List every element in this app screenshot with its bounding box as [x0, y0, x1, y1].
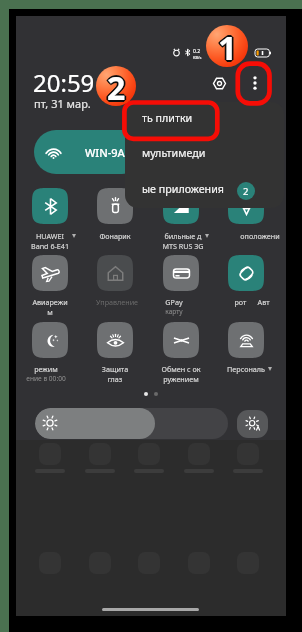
staticText: 20:59 [33, 66, 95, 99]
button[interactable]: HUAWEI [32, 188, 68, 224]
staticText: 1 [219, 25, 238, 66]
button[interactable]: Защита [97, 322, 133, 358]
button[interactable]: GPay [163, 255, 199, 291]
staticText: 2 [107, 66, 126, 106]
button[interactable]: оположени [228, 188, 264, 224]
staticText: глаз [72, 374, 158, 384]
staticText: 1 [218, 27, 237, 67]
staticText: WIN-9A [85, 145, 125, 160]
staticText: ть плитки [142, 111, 193, 126]
button[interactable]: Персональ [228, 322, 264, 358]
staticText: 2 [243, 185, 249, 198]
staticText: рот Авт [209, 297, 295, 307]
staticText: MTS RUS 3G [140, 241, 226, 251]
button[interactable]: More options [244, 72, 266, 94]
staticText: Авиарежи [7, 297, 93, 307]
staticText: 0.2 [193, 48, 201, 55]
staticText: Band 6-E41 [7, 241, 93, 251]
button[interactable]: Авиарежи [32, 255, 68, 291]
button[interactable]: WIN-9A [34, 130, 144, 174]
staticText: режим [3, 364, 89, 374]
staticText: 1 [218, 25, 237, 65]
staticText: GPay [131, 297, 217, 307]
button[interactable]: Управление [97, 255, 133, 291]
staticText: Защита [72, 364, 158, 374]
button[interactable]: бильные д [163, 188, 199, 224]
staticText: пт, 31 мар. [34, 96, 91, 111]
staticText: бильные д [140, 231, 226, 241]
staticText: 1 [220, 25, 239, 67]
staticText: Персональ [203, 364, 289, 374]
staticText: 2 [108, 67, 127, 106]
staticText: KB/s [193, 55, 202, 60]
button[interactable]: ые приложения [125, 173, 284, 208]
staticText: 1 [219, 26, 238, 67]
staticText: 2 [106, 67, 125, 106]
button[interactable]: Обмен с ок [163, 322, 199, 358]
staticText: ружением [138, 374, 224, 384]
staticText: м [7, 307, 93, 317]
staticText: 1 [217, 25, 236, 66]
button[interactable]: Фонарик [97, 188, 133, 224]
staticText: оположени [217, 231, 302, 241]
staticText: 1 [216, 25, 235, 67]
staticText: ение в 00:00 [3, 374, 89, 383]
staticText: 2 [107, 68, 126, 106]
staticText: Обмен с ок [138, 364, 224, 374]
button[interactable]: Automatic brightness [237, 410, 268, 438]
button[interactable]: Settings [208, 72, 230, 94]
staticText: ые приложения [142, 182, 224, 197]
staticText: 1 [218, 25, 237, 67]
button[interactable]: режим [32, 322, 68, 358]
staticText: мультимеди [142, 146, 206, 161]
staticText: HUAWEI [7, 231, 93, 241]
staticText: Управление [74, 297, 160, 307]
staticText: 2 [107, 66, 126, 104]
button[interactable]: ть плитки [125, 102, 284, 137]
staticText: 2 [105, 66, 124, 106]
staticText: 2 [108, 66, 127, 105]
staticText: карту [131, 307, 217, 316]
button[interactable]: мультимеди [125, 137, 284, 172]
staticText: 1 [217, 26, 236, 67]
button[interactable]: Brightness [35, 408, 228, 439]
staticText: 2 [106, 66, 125, 105]
staticText: Фонарик [72, 231, 158, 241]
staticText: 2 [109, 66, 128, 106]
button[interactable]: рот Авт [228, 255, 264, 291]
